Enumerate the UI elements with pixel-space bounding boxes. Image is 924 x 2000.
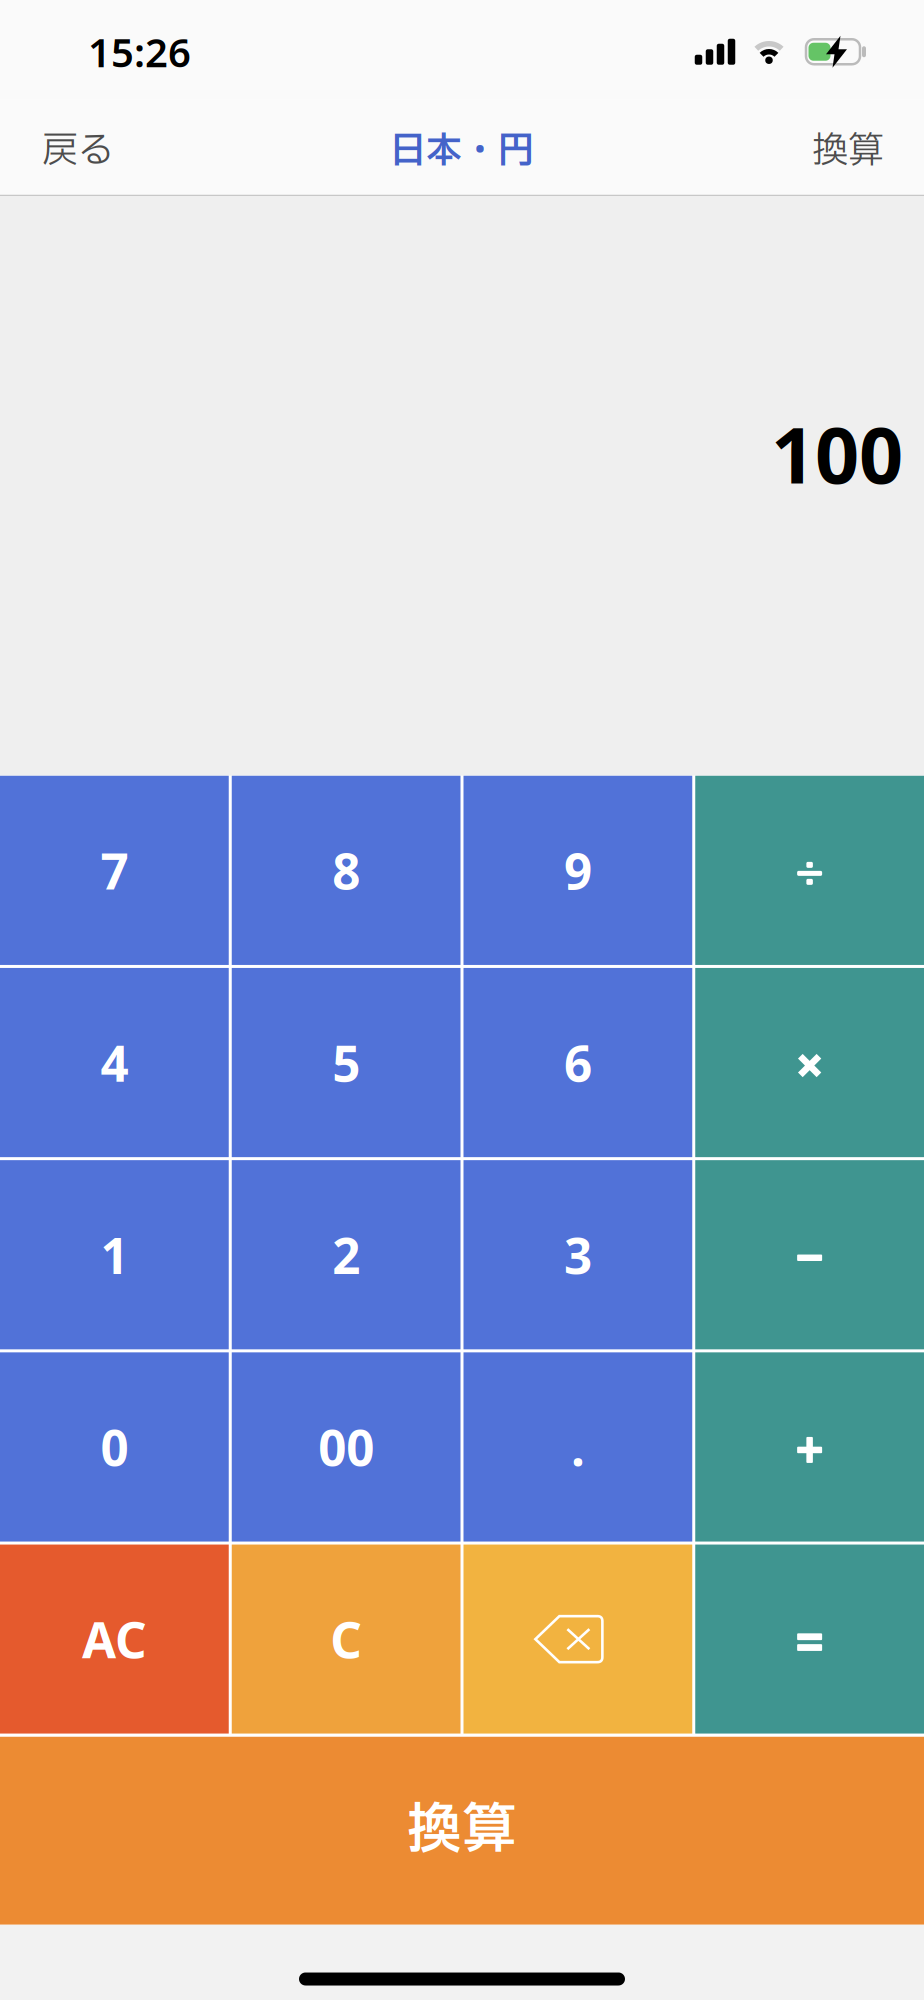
- button[interactable]: 5: [232, 968, 461, 1157]
- staticText: C: [330, 1606, 362, 1672]
- staticText: 8: [332, 838, 360, 903]
- staticText: .: [571, 1414, 585, 1480]
- button[interactable]: 換算: [0, 1737, 924, 1925]
- staticText: 3: [564, 1222, 592, 1287]
- button[interactable]: 4: [0, 968, 229, 1157]
- staticText: 9: [564, 838, 592, 903]
- button[interactable]: 2: [232, 1160, 461, 1349]
- button[interactable]: 6: [463, 968, 692, 1157]
- staticText: 戻る: [42, 124, 114, 178]
- button[interactable]: Multiply: [695, 968, 924, 1157]
- button[interactable]: Divide: [695, 776, 924, 965]
- button[interactable]: .: [463, 1352, 692, 1541]
- staticText: 15:26: [88, 25, 191, 78]
- button[interactable]: Subtract: [695, 1160, 924, 1349]
- button[interactable]: 3: [463, 1160, 692, 1349]
- staticText: 00: [318, 1414, 374, 1480]
- button[interactable]: C: [232, 1544, 461, 1734]
- button[interactable]: 換算: [812, 124, 884, 178]
- staticText: 換算: [407, 1790, 517, 1872]
- button[interactable]: 8: [232, 776, 461, 965]
- staticText: 1: [100, 1222, 128, 1287]
- button[interactable]: 0: [0, 1352, 229, 1541]
- button[interactable]: 1: [0, 1160, 229, 1349]
- button[interactable]: 戻る: [42, 124, 114, 178]
- staticText: AC: [82, 1606, 147, 1672]
- button[interactable]: Delete: [463, 1544, 692, 1734]
- staticText: 4: [100, 1030, 128, 1095]
- button[interactable]: Equals: [695, 1544, 924, 1734]
- button[interactable]: Add: [695, 1352, 924, 1541]
- button[interactable]: AC: [0, 1544, 229, 1734]
- staticText: 0: [100, 1414, 128, 1480]
- button[interactable]: 00: [232, 1352, 461, 1541]
- button[interactable]: 9: [463, 776, 692, 965]
- staticText: 100: [771, 402, 903, 505]
- staticText: 6: [564, 1030, 592, 1095]
- staticText: 7: [100, 838, 128, 903]
- staticText: 5: [332, 1030, 360, 1095]
- button[interactable]: 7: [0, 776, 229, 965]
- staticText: 2: [332, 1222, 360, 1287]
- staticText: 換算: [812, 124, 884, 178]
- staticText: 日本・円: [390, 124, 534, 178]
